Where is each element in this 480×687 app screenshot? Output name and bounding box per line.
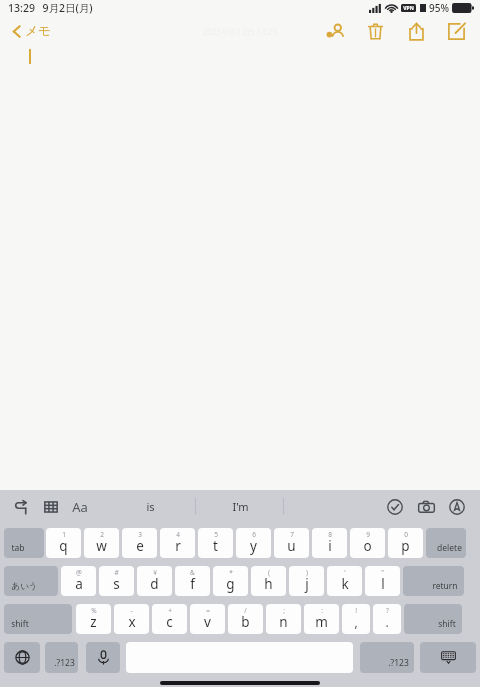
- staticText: b: [241, 613, 250, 631]
- button[interactable]: Share: [404, 19, 428, 43]
- button[interactable]: Hide keyboard: [420, 642, 476, 673]
- button[interactable]: ;: [266, 604, 301, 634]
- button[interactable]: @: [61, 566, 96, 596]
- button[interactable]: :: [304, 604, 339, 634]
- button[interactable]: 2: [84, 528, 119, 558]
- staticText: ¥: [153, 568, 157, 577]
- staticText: Aa: [72, 498, 88, 516]
- button[interactable]: *: [213, 566, 248, 596]
- staticText: d: [150, 575, 159, 593]
- staticText: メモ: [25, 23, 51, 39]
- button[interactable]: 7: [274, 528, 309, 558]
- button[interactable]: I'm: [215, 499, 265, 514]
- staticText: %: [91, 606, 97, 615]
- button[interactable]: Aa: [70, 496, 90, 518]
- button[interactable]: ): [289, 566, 324, 596]
- staticText: p: [401, 537, 410, 555]
- button[interactable]: +: [152, 604, 187, 634]
- staticText: shift: [438, 618, 456, 630]
- staticText: v: [204, 613, 211, 631]
- button[interactable]: 0: [388, 528, 423, 558]
- staticText: VPN: [403, 5, 414, 12]
- staticText: 9: [366, 530, 370, 539]
- staticText: delete: [437, 542, 462, 554]
- button[interactable]: =: [190, 604, 225, 634]
- staticText: return: [432, 580, 458, 592]
- button[interactable]: #: [99, 566, 134, 596]
- staticText: s: [113, 575, 120, 593]
- staticText: 1: [62, 530, 66, 539]
- staticText: m: [315, 613, 328, 631]
- button[interactable]: 5: [198, 528, 233, 558]
- button[interactable]: %: [76, 604, 111, 634]
- button[interactable]: &: [175, 566, 210, 596]
- staticText: k: [341, 575, 349, 593]
- button[interactable]: ?: [373, 604, 401, 634]
- staticText: 8: [328, 530, 332, 539]
- staticText: a: [75, 575, 83, 593]
- staticText: h: [264, 575, 273, 593]
- button[interactable]: 6: [236, 528, 271, 558]
- button[interactable]: /: [228, 604, 263, 634]
- button[interactable]: New note: [444, 19, 468, 43]
- staticText: l: [381, 575, 385, 593]
- staticText: .: [385, 614, 389, 630]
- button[interactable]: ": [365, 566, 400, 596]
- button[interactable]: メモ: [10, 20, 53, 42]
- staticText: f: [190, 575, 195, 593]
- staticText: u: [287, 537, 296, 555]
- staticText: c: [166, 613, 173, 631]
- button[interactable]: is: [125, 499, 175, 514]
- button[interactable]: Markup: [446, 496, 468, 518]
- button[interactable]: Dictation: [86, 642, 120, 673]
- button[interactable]: !: [342, 604, 370, 634]
- button[interactable]: shift: [4, 604, 72, 634]
- button[interactable]: .?123: [360, 642, 414, 673]
- button[interactable]: 9: [350, 528, 385, 558]
- button[interactable]: 4: [160, 528, 195, 558]
- staticText: /: [244, 606, 247, 615]
- staticText: is: [146, 499, 155, 514]
- button[interactable]: -: [114, 604, 149, 634]
- staticText: (: [268, 568, 270, 577]
- staticText: !: [355, 606, 357, 615]
- staticText: 95%: [429, 1, 449, 15]
- staticText: j: [305, 575, 309, 593]
- staticText: *: [229, 568, 233, 577]
- button[interactable]: .?123: [45, 642, 78, 673]
- button[interactable]: Table: [40, 496, 62, 518]
- button[interactable]: tab: [4, 528, 44, 558]
- button[interactable]: Checklist: [384, 496, 406, 518]
- staticText: y: [250, 537, 257, 555]
- button[interactable]: return: [403, 566, 464, 596]
- button[interactable]: 8: [312, 528, 347, 558]
- button[interactable]: Camera: [415, 496, 437, 518]
- button[interactable]: ¥: [137, 566, 172, 596]
- button[interactable]: delete: [426, 528, 466, 558]
- button[interactable]: あいう: [4, 566, 58, 596]
- staticText: 13:29: [8, 1, 35, 15]
- button[interactable]: 1: [46, 528, 81, 558]
- staticText: i: [328, 537, 332, 555]
- button[interactable]: shift: [404, 604, 462, 634]
- staticText: &: [190, 568, 195, 577]
- button[interactable]: ': [327, 566, 362, 596]
- staticText: w: [96, 537, 107, 555]
- staticText: +: [168, 606, 172, 615]
- staticText: shift: [11, 618, 29, 630]
- button[interactable]: Undo: [10, 496, 32, 518]
- button[interactable]: Add people: [323, 19, 347, 43]
- staticText: -: [130, 606, 133, 615]
- staticText: r: [175, 537, 181, 555]
- button[interactable]: (: [251, 566, 286, 596]
- staticText: あいう: [11, 581, 38, 592]
- button[interactable]: Language: [4, 642, 40, 673]
- staticText: 7: [290, 530, 294, 539]
- staticText: .?123: [388, 657, 409, 669]
- staticText: #: [114, 568, 119, 577]
- button[interactable]: Delete: [363, 19, 387, 43]
- button[interactable]: 3: [122, 528, 157, 558]
- staticText: n: [279, 613, 288, 631]
- staticText: I'm: [232, 499, 249, 514]
